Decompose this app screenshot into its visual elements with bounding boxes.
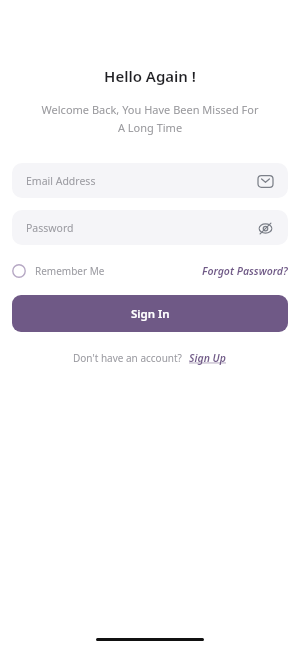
button[interactable]: Remember Me	[12, 264, 111, 278]
other: Show password	[256, 219, 274, 237]
button[interactable]: Password	[12, 210, 288, 245]
staticText: Sign In	[131, 306, 170, 322]
staticText: Email Address	[26, 174, 96, 188]
staticText: Hello Again !	[104, 66, 196, 86]
staticText: Sign Up	[189, 351, 227, 365]
staticText: Welcome Back, You Have Been Missed For A…	[38, 102, 262, 135]
staticText: Password	[26, 221, 74, 235]
staticText: Forgot Password?	[202, 264, 288, 278]
button[interactable]: Email Address	[12, 163, 288, 198]
other: Email	[256, 172, 274, 190]
button[interactable]: Sign In	[12, 295, 288, 332]
staticText: Remember Me	[35, 264, 105, 278]
button[interactable]: Sign Up	[189, 351, 227, 365]
button[interactable]: Forgot Password?	[202, 264, 288, 278]
staticText: Don't have an account?	[73, 351, 182, 365]
